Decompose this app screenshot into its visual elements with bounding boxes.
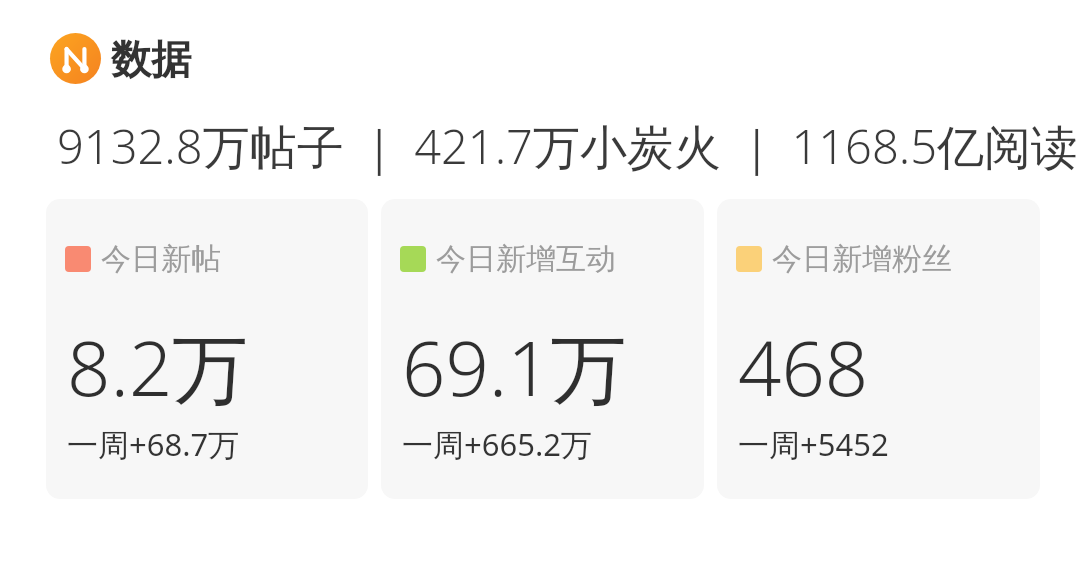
staticText: 468 — [738, 315, 869, 419]
other: 数据 app icon — [50, 33, 101, 84]
staticText: 数据 — [111, 34, 191, 84]
button[interactable]: 今日新增粉丝 — [717, 199, 1040, 499]
staticText: 今日新增粉丝 — [772, 240, 952, 278]
staticText: 一周+68.7万 — [67, 423, 240, 465]
staticText: 69.1万 — [402, 315, 627, 419]
staticText: 一周+5452 — [738, 423, 889, 465]
button[interactable]: 数据 app icon — [50, 33, 1080, 84]
button[interactable]: 今日新增互动 — [381, 199, 704, 499]
staticText: 8.2万 — [67, 315, 249, 419]
staticText: 今日新帖 — [101, 240, 221, 278]
staticText: 今日新增互动 — [436, 240, 616, 278]
button[interactable]: 今日新帖 — [46, 199, 368, 499]
staticText: 一周+665.2万 — [402, 423, 592, 465]
staticText: 9132.8万帖子 ｜ 421.7万小炭火 ｜ 1168.5亿阅读 — [57, 114, 1079, 178]
